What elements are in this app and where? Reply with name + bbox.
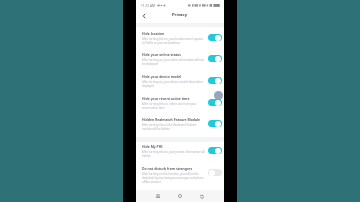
staticText: After turning this on, your location won… xyxy=(142,37,203,41)
button[interactable]: Back xyxy=(138,10,149,21)
staticText: in Profile or your card address xyxy=(142,41,180,45)
staticText: Do not disturb from strangers xyxy=(142,166,193,171)
button[interactable]: Recent apps xyxy=(153,191,163,201)
button[interactable]: Hide your recent active time xyxy=(136,96,224,115)
staticText: displayed xyxy=(142,84,155,88)
staticText: Privacy xyxy=(172,12,188,18)
staticText: module will be hidden xyxy=(142,127,170,131)
staticText: Hide your online status xyxy=(142,52,181,57)
staticText: hidden xyxy=(142,154,151,158)
button[interactable]: Toggle xyxy=(208,120,222,127)
button[interactable]: Toggle xyxy=(208,169,222,176)
staticText: Hidden Realmatch Feature Module xyxy=(142,117,201,122)
staticText: offline account xyxy=(142,180,161,184)
staticText: disturbed by any strangers messages and … xyxy=(142,176,204,180)
staticText: Hide your device model xyxy=(142,74,182,79)
staticText: After turning on, your device model info… xyxy=(142,80,203,84)
button[interactable]: Hide your device model xyxy=(136,74,224,93)
staticText: After turning on this function, you will… xyxy=(142,172,199,176)
button[interactable]: Toggle xyxy=(208,77,222,84)
staticText: Hide location xyxy=(142,31,165,36)
staticText: After turning this on, your private info… xyxy=(142,150,205,154)
button[interactable]: Hide your online status xyxy=(136,52,224,71)
staticText: Hide your recent active time xyxy=(142,96,190,101)
button[interactable]: Hide location xyxy=(136,31,224,50)
button[interactable]: Hidden Realmatch Feature Module xyxy=(136,117,224,136)
button[interactable]: Toggle xyxy=(208,55,222,62)
button[interactable]: Toggle xyxy=(208,147,222,154)
button[interactable]: Home xyxy=(175,191,185,201)
staticText: be displayed xyxy=(142,62,158,66)
button[interactable]: Toggle xyxy=(208,99,222,106)
button[interactable]: Do not disturb from strangers xyxy=(136,166,224,185)
staticText: After turning on, your online informatio… xyxy=(142,58,204,62)
button[interactable]: Toggle xyxy=(208,34,222,41)
staticText: Hide My PHI xyxy=(142,144,163,149)
staticText: recent active time xyxy=(142,106,165,110)
staticText: After turning this on the Realmatch feat… xyxy=(142,123,197,127)
staticText: After turning this on, others won't see … xyxy=(142,102,197,106)
button[interactable]: Back xyxy=(197,191,207,201)
button[interactable]: Hide My PHI xyxy=(136,144,224,163)
staticText: 11:12 AM xyxy=(141,4,155,8)
